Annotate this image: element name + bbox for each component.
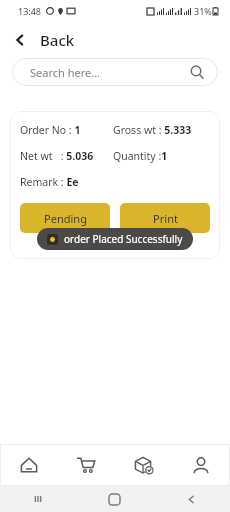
staticText: Gross wt : 5.333 [113,123,210,137]
staticText: Print [153,211,178,226]
staticText: Quantity :1 [113,149,210,163]
button[interactable]: Print [120,203,210,233]
staticText: Pending [44,211,87,226]
button[interactable]: Pending [20,203,110,233]
staticText: 13:48 [18,5,42,17]
button[interactable]: Orders [114,444,172,486]
staticText: order Placed Successfully [64,232,183,246]
button[interactable]: Cart [57,444,114,486]
staticText: Search here... [30,65,101,80]
staticText: Back [40,30,75,50]
staticText: 31% [194,5,212,17]
button[interactable]: Back [8,28,32,52]
staticText: Order No : 1 [20,123,113,137]
staticText: Remark : Ee [20,175,210,189]
staticText: Net wt : 5.036 [20,149,113,163]
button[interactable]: Search here... [12,58,218,86]
button[interactable]: Profile [172,444,230,486]
button[interactable]: Home [0,444,57,486]
